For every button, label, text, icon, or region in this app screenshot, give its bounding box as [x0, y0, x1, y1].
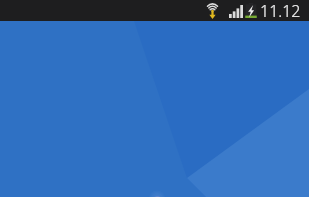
other: Status bar: [0, 0, 309, 21]
other: Battery charging: [245, 3, 257, 18]
other: Cellular signal: [229, 5, 243, 18]
other: Wi-Fi connected: [205, 1, 220, 19]
staticText: 11.12: [260, 0, 301, 21]
